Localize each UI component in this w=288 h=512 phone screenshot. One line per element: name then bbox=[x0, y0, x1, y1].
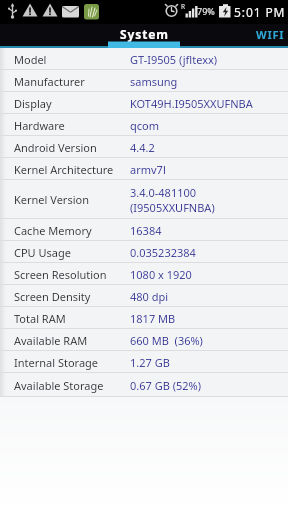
button[interactable]: Available Storage bbox=[0, 373, 288, 397]
staticText: Model bbox=[14, 52, 47, 67]
button[interactable]: Total RAM bbox=[0, 307, 288, 329]
staticText: armv7l bbox=[130, 162, 166, 177]
button[interactable]: Android Version bbox=[0, 136, 288, 158]
staticText: 5:01 PM bbox=[234, 4, 286, 20]
staticText: System bbox=[120, 26, 169, 42]
staticText: Display bbox=[14, 96, 52, 111]
staticText: Cache Memory bbox=[14, 223, 92, 238]
staticText: Screen Density bbox=[14, 289, 91, 304]
staticText: 79% bbox=[197, 5, 215, 17]
staticText: 0.035232384 bbox=[130, 245, 196, 260]
staticText: R bbox=[181, 2, 186, 11]
staticText: Manufacturer bbox=[14, 74, 85, 89]
staticText: Hardware bbox=[14, 118, 65, 133]
button[interactable]: Kernel Architecture bbox=[0, 158, 288, 180]
button[interactable]: WIFI bbox=[256, 27, 285, 42]
button[interactable]: Available RAM bbox=[0, 329, 288, 351]
button[interactable]: Model bbox=[0, 48, 288, 70]
staticText: KOT49H.I9505XXUFNBA bbox=[130, 96, 253, 111]
staticText: WIFI bbox=[256, 27, 285, 42]
staticText: 1817 MB bbox=[130, 311, 176, 326]
button[interactable]: CPU Usage bbox=[0, 241, 288, 263]
staticText: 16384 bbox=[130, 223, 162, 238]
staticText: Android Version bbox=[14, 140, 97, 155]
button[interactable]: System bbox=[120, 26, 169, 42]
staticText: qcom bbox=[130, 118, 159, 133]
staticText: Total RAM bbox=[14, 311, 66, 326]
staticText: 3.4.0-481100 bbox=[130, 185, 197, 200]
staticText: 1080 x 1920 bbox=[130, 267, 192, 282]
staticText: Internal Storage bbox=[14, 355, 99, 370]
button[interactable]: Screen Density bbox=[0, 285, 288, 307]
staticText: 1.27 GB bbox=[130, 355, 170, 370]
button[interactable]: Internal Storage bbox=[0, 351, 288, 373]
button[interactable]: Manufacturer bbox=[0, 70, 288, 92]
staticText: Available Storage bbox=[14, 378, 104, 393]
staticText: CPU Usage bbox=[14, 245, 71, 260]
staticText: GT-I9505 (jfltexx) bbox=[130, 52, 218, 67]
button[interactable]: Kernel Version bbox=[0, 180, 288, 219]
button[interactable]: Cache Memory bbox=[0, 219, 288, 241]
staticText: Available RAM bbox=[14, 333, 88, 348]
staticText: 4.4.2 bbox=[130, 140, 155, 155]
button[interactable]: Screen Resolution bbox=[0, 263, 288, 285]
staticText: Kernel Version bbox=[14, 192, 89, 207]
button[interactable]: Display bbox=[0, 92, 288, 114]
staticText: 480 dpi bbox=[130, 289, 169, 304]
staticText: Screen Resolution bbox=[14, 267, 107, 282]
staticText: (I9505XXUFNBA) bbox=[130, 200, 215, 215]
staticText: Kernel Architecture bbox=[14, 162, 114, 177]
button[interactable]: Hardware bbox=[0, 114, 288, 136]
staticText: 660 MB (36%) bbox=[130, 333, 203, 348]
staticText: 0.67 GB (52%) bbox=[130, 378, 202, 393]
staticText: samsung bbox=[130, 74, 178, 89]
